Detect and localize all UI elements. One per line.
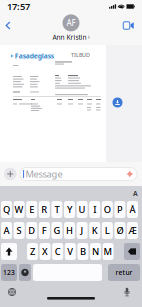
staticText: C: [55, 245, 61, 258]
staticText: T: [54, 203, 59, 216]
staticText: 17:57: [7, 0, 30, 13]
staticText: R: [41, 203, 47, 216]
staticText: U: [79, 203, 86, 216]
button[interactable]: F: [39, 222, 50, 239]
button[interactable]: O: [102, 201, 113, 218]
button[interactable]: A: [1, 222, 12, 239]
staticText: L: [105, 224, 110, 237]
button[interactable]: J: [77, 222, 88, 239]
staticText: A: [3, 224, 9, 237]
staticText: N: [92, 245, 99, 258]
button[interactable]: 123: [1, 264, 17, 281]
button[interactable]: W: [14, 201, 25, 218]
staticText: K: [92, 224, 98, 237]
staticText: P: [117, 203, 123, 216]
button[interactable]: Delete: [124, 243, 140, 260]
button[interactable]: H: [64, 222, 75, 239]
staticText: Ann Kristin: [52, 33, 86, 42]
staticText: Ø: [116, 224, 123, 237]
staticText: AF: [66, 18, 75, 28]
button[interactable]: FaceTime: [121, 18, 135, 32]
staticText: J: [81, 224, 84, 237]
button[interactable]: Ø: [114, 222, 125, 239]
button[interactable]: P: [114, 201, 125, 218]
staticText: M: [104, 245, 113, 258]
button[interactable]: T: [51, 201, 62, 218]
button[interactable]: I: [89, 201, 100, 218]
button[interactable]: Dictate: [119, 285, 135, 299]
button[interactable]: B: [77, 243, 88, 260]
button[interactable]: V: [65, 243, 76, 260]
staticText: Æ: [128, 224, 136, 237]
button[interactable]: M: [103, 243, 114, 260]
staticText: Q: [3, 203, 10, 216]
button[interactable]: Back: [1, 18, 15, 32]
staticText: E: [29, 203, 34, 216]
button[interactable]: G: [51, 222, 62, 239]
button[interactable]: Å: [127, 201, 138, 218]
button[interactable]: Y: [64, 201, 75, 218]
staticText: TILBUD: [71, 51, 90, 59]
staticText: retur: [115, 268, 132, 277]
button[interactable]: N: [90, 243, 101, 260]
button[interactable]: E: [26, 201, 37, 218]
button[interactable]: Shift: [1, 243, 17, 260]
staticText: 123: [3, 268, 15, 277]
button[interactable]: D: [26, 222, 37, 239]
button[interactable]: Z: [27, 243, 38, 260]
staticText: O: [104, 203, 111, 216]
button[interactable]: AF: [41, 15, 101, 41]
staticText: H: [66, 224, 73, 237]
button[interactable]: Send: [127, 171, 133, 177]
staticText: B: [80, 245, 86, 258]
button[interactable]: C: [52, 243, 63, 260]
button[interactable]: K: [89, 222, 100, 239]
staticText: G: [53, 224, 60, 237]
staticText: X: [42, 245, 48, 258]
staticText: Y: [67, 203, 72, 216]
staticText: S: [17, 224, 22, 237]
staticText: V: [67, 245, 73, 258]
staticText: F: [42, 224, 47, 237]
button[interactable]: retur: [108, 264, 140, 281]
button[interactable]: R: [39, 201, 50, 218]
button[interactable]: U: [77, 201, 88, 218]
button[interactable]: X: [40, 243, 51, 260]
button[interactable]: Emoji: [19, 264, 31, 281]
button[interactable]: Q: [1, 201, 12, 218]
button[interactable]: S: [14, 222, 25, 239]
staticText: Z: [30, 245, 35, 258]
button[interactable]: L: [102, 222, 113, 239]
staticText: Å: [129, 203, 135, 216]
button[interactable]: Æ: [127, 222, 138, 239]
button[interactable]: Add attachment: [4, 168, 16, 180]
staticText: W: [15, 203, 24, 216]
button[interactable]: Change keyboard: [4, 285, 20, 299]
staticText: Message: [26, 168, 63, 180]
staticText: A: [133, 189, 138, 198]
staticText: Fasadeglass: [15, 51, 54, 60]
staticText: I: [93, 203, 96, 216]
staticText: D: [28, 224, 35, 237]
button[interactable]: Download attachment: [112, 97, 122, 107]
